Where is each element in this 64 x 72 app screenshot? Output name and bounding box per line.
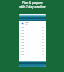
button[interactable] <box>21 38 44 41</box>
button[interactable] <box>19 61 46 67</box>
button[interactable] <box>21 29 44 32</box>
button[interactable] <box>21 26 44 29</box>
staticText: Plan & prepare with 7-day weather <box>19 1 46 9</box>
button[interactable] <box>21 35 44 38</box>
button[interactable] <box>21 32 44 35</box>
button[interactable] <box>21 41 44 44</box>
button[interactable] <box>21 53 44 56</box>
button[interactable] <box>21 44 44 47</box>
button[interactable] <box>21 50 44 53</box>
button[interactable]: Current location <box>21 21 44 26</box>
other: Current location <box>21 22 24 25</box>
button[interactable] <box>21 47 44 50</box>
